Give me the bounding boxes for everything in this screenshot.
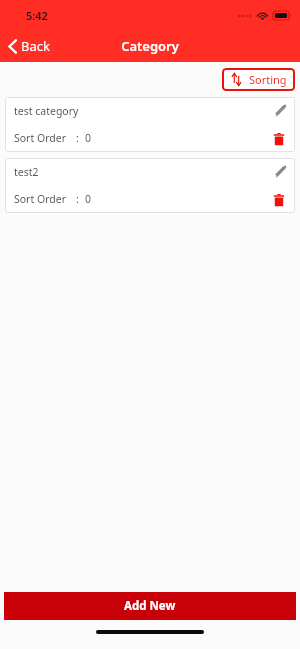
staticText: : (76, 192, 79, 206)
staticText: Add New (124, 598, 176, 614)
staticText: Sort Order (14, 192, 67, 206)
button[interactable]: Back (0, 33, 60, 59)
button[interactable]: test2 (5, 158, 295, 213)
staticText: Back (21, 37, 50, 55)
staticText: : (76, 131, 79, 145)
staticText: 0 (85, 131, 92, 145)
staticText: 0 (85, 192, 92, 206)
button[interactable]: Delete (267, 127, 291, 151)
button[interactable]: Add New (4, 592, 296, 620)
staticText: Category (121, 37, 179, 55)
button[interactable]: Edit (267, 99, 291, 123)
button[interactable]: Edit (267, 160, 291, 184)
staticText: test2 (14, 165, 39, 179)
button[interactable]: Sorting (222, 68, 295, 91)
button[interactable]: Delete (267, 188, 291, 212)
staticText: 5:42 (26, 8, 48, 23)
staticText: Sort Order (14, 131, 67, 145)
staticText: Sorting (249, 72, 287, 87)
button[interactable]: test category (5, 97, 295, 152)
staticText: test category (14, 104, 79, 118)
